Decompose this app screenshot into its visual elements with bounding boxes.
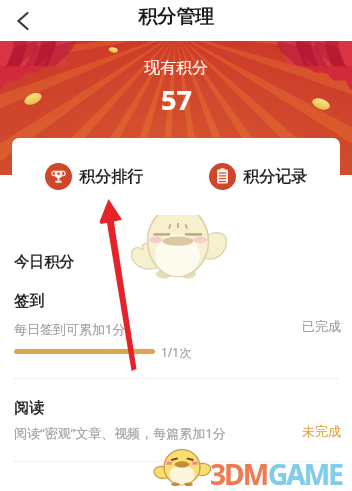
staticText: 3DM	[210, 455, 268, 491]
button[interactable]: 阅读	[0, 399, 352, 457]
staticText: 未完成	[302, 423, 341, 439]
staticText: 1/1次	[161, 344, 192, 360]
staticText: 阅读“密观”文章、视频，每篇累加1分	[14, 424, 226, 442]
button[interactable]: Back	[10, 8, 36, 34]
staticText: 现有积分	[144, 58, 208, 78]
staticText: 签到	[14, 292, 44, 311]
staticText: 57	[161, 81, 192, 118]
button[interactable]: 签到	[0, 292, 352, 376]
staticText: GAME	[268, 455, 343, 491]
staticText: 阅读	[14, 399, 44, 418]
staticText: 每日签到可累加1分	[14, 320, 126, 338]
staticText: 已完成	[302, 318, 341, 334]
button[interactable]: 积分记录	[176, 138, 340, 215]
staticText: 积分管理	[138, 5, 214, 29]
staticText: 今日积分	[14, 253, 74, 272]
staticText: 积分排行	[79, 167, 143, 187]
button[interactable]: 积分排行	[12, 138, 176, 215]
staticText: 积分记录	[243, 167, 307, 187]
